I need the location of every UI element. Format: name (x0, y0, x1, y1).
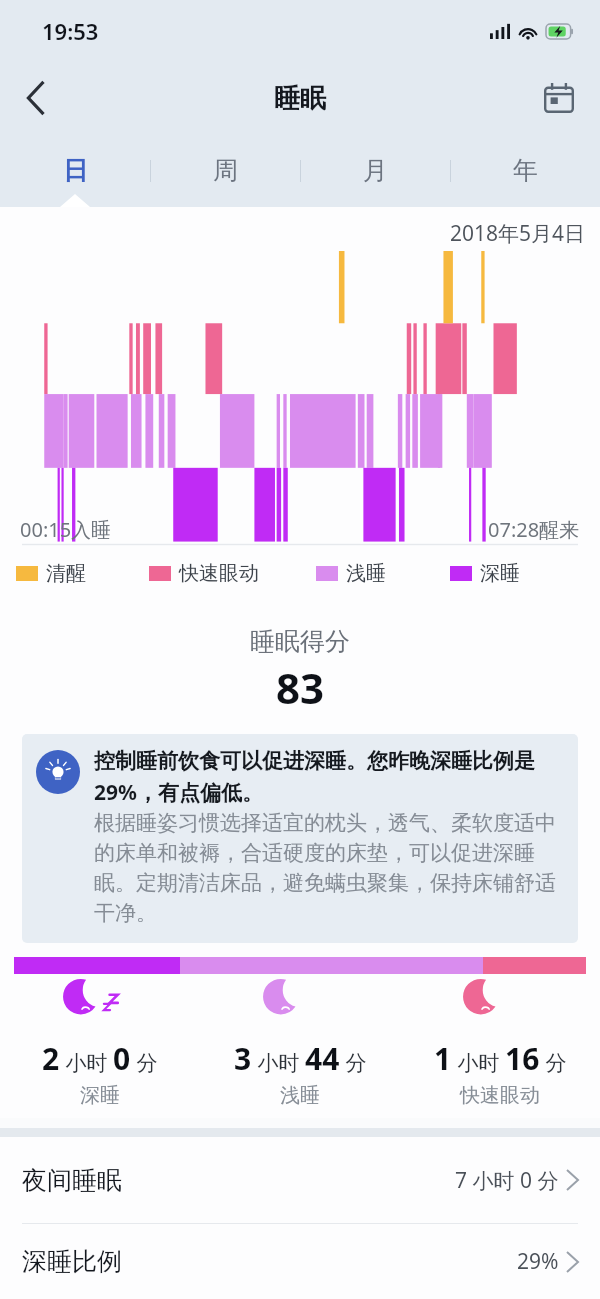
staticText: 深睡 (480, 561, 520, 586)
staticText: 睡眠 (274, 82, 326, 115)
staticText: 小时 (252, 1048, 305, 1077)
staticText: 分 (340, 1048, 367, 1077)
button[interactable]: 月 (300, 134, 450, 207)
staticText: 0 (113, 1038, 131, 1079)
staticText: 快速眼动 (460, 1083, 540, 1108)
staticText: 周 (213, 155, 238, 186)
staticText: 3 (234, 1038, 252, 1079)
button[interactable]: 控制睡前饮食可以促进深睡。您昨晚深睡比例是29%，有点偏低。 (22, 734, 578, 943)
staticText: 分 (131, 1048, 158, 1077)
staticText: 夜间睡眠 (22, 1165, 122, 1196)
staticText: 07:28醒来 (488, 516, 580, 543)
staticText: 浅睡 (280, 1083, 320, 1108)
staticText: 小时 (60, 1048, 113, 1077)
staticText: 29% (517, 1247, 559, 1276)
staticText: 小时 (452, 1048, 505, 1077)
staticText: 83 (0, 659, 600, 716)
staticText: 控制睡前饮食可以促进深睡。您昨晚深睡比例是29%，有点偏低。 (94, 748, 562, 806)
staticText: 2018年5月4日 (450, 219, 586, 248)
button[interactable]: 年 (450, 134, 600, 207)
staticText: 00:15入睡 (20, 516, 112, 543)
staticText: 44 (305, 1038, 340, 1079)
staticText: 浅睡 (346, 561, 386, 586)
staticText: 清醒 (46, 561, 86, 586)
staticText: 7 小时 0 分 (455, 1166, 559, 1195)
staticText: 19:53 (42, 16, 99, 46)
button[interactable]: 深睡比例 (0, 1224, 600, 1299)
staticText: 月 (363, 155, 388, 186)
staticText: 睡眠得分 (0, 626, 600, 657)
button[interactable]: 3 (200, 988, 400, 1108)
staticText: 快速眼动 (179, 561, 259, 586)
staticText: 日 (63, 155, 88, 186)
button[interactable]: 1 (400, 988, 600, 1108)
staticText: 16 (505, 1038, 540, 1079)
button[interactable]: 周 (150, 134, 300, 207)
button[interactable]: 夜间睡眠 (0, 1137, 600, 1224)
staticText: 深睡比例 (22, 1246, 122, 1277)
staticText: 根据睡姿习惯选择适宜的枕头，透气、柔软度适中的床单和被褥，合适硬度的床垫，可以促… (94, 810, 562, 927)
button[interactable]: Back (8, 70, 64, 126)
button[interactable]: 日 (0, 134, 150, 207)
staticText: 分 (540, 1048, 567, 1077)
staticText: 1 (434, 1038, 452, 1079)
staticText: 年 (513, 155, 538, 186)
staticText: 深睡 (80, 1083, 120, 1108)
staticText: 2 (42, 1038, 60, 1079)
button[interactable]: Calendar (532, 71, 586, 125)
button[interactable]: 2 (0, 988, 200, 1108)
